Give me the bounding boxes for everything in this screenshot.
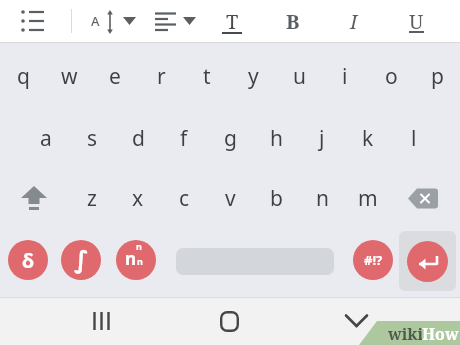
button[interactable]: u xyxy=(276,52,322,100)
button[interactable]: T xyxy=(212,2,252,40)
staticText: n xyxy=(137,255,143,267)
button[interactable]: B xyxy=(273,2,313,40)
staticText: d xyxy=(132,124,145,153)
button[interactable]: i xyxy=(322,52,368,100)
staticText: a xyxy=(40,124,52,153)
staticText: δ xyxy=(22,247,35,274)
button[interactable]: #!? xyxy=(353,240,393,280)
staticText: A xyxy=(91,12,100,30)
staticText: t xyxy=(203,62,211,91)
staticText: wiki xyxy=(388,323,424,345)
staticText: m xyxy=(358,184,378,213)
staticText: T xyxy=(226,8,239,35)
button[interactable]: s xyxy=(69,114,115,162)
button[interactable]: f xyxy=(161,114,207,162)
staticText: p xyxy=(431,62,444,91)
staticText: u xyxy=(293,62,306,91)
staticText: g xyxy=(224,124,237,153)
button[interactable]: a xyxy=(23,114,69,162)
button[interactable]: I xyxy=(334,2,374,40)
staticText: o xyxy=(385,62,398,91)
staticText: ∫ xyxy=(74,246,89,274)
staticText: U xyxy=(409,8,424,35)
button[interactable]: e xyxy=(92,52,138,100)
button[interactable]: j xyxy=(299,114,345,162)
staticText: f xyxy=(180,124,188,153)
button[interactable]: g xyxy=(207,114,253,162)
staticText: x xyxy=(132,184,144,213)
button[interactable]: x xyxy=(115,174,161,222)
staticText: n xyxy=(136,240,142,252)
staticText: j xyxy=(319,124,325,153)
button[interactable]: m xyxy=(345,174,391,222)
staticText: How xyxy=(422,323,459,345)
staticText: l xyxy=(411,124,417,153)
button[interactable] xyxy=(399,231,456,291)
button[interactable]: h xyxy=(253,114,299,162)
button[interactable]: w xyxy=(46,52,92,100)
button[interactable]: δ xyxy=(8,240,48,280)
button[interactable]: c xyxy=(161,174,207,222)
button[interactable]: k xyxy=(345,114,391,162)
button[interactable]: d xyxy=(115,114,161,162)
button[interactable]: r xyxy=(138,52,184,100)
staticText: z xyxy=(87,184,97,213)
button[interactable] xyxy=(150,3,202,39)
staticText: c xyxy=(179,184,190,213)
staticText: s xyxy=(87,124,98,153)
staticText: i xyxy=(342,62,348,91)
staticText: #!? xyxy=(364,251,383,269)
staticText: w xyxy=(61,62,78,91)
staticText: n xyxy=(316,184,329,213)
button[interactable]: z xyxy=(69,174,115,222)
button[interactable]: b xyxy=(253,174,299,222)
button[interactable] xyxy=(6,174,62,222)
staticText: y xyxy=(248,62,259,91)
staticText: r xyxy=(157,62,166,91)
button[interactable]: q xyxy=(0,52,46,100)
staticText: q xyxy=(17,62,30,91)
staticText: e xyxy=(109,62,121,91)
button[interactable]: U xyxy=(396,2,436,40)
button[interactable]: t xyxy=(184,52,230,100)
button[interactable] xyxy=(338,302,374,340)
button[interactable] xyxy=(211,302,247,340)
button[interactable]: v xyxy=(207,174,253,222)
staticText: B xyxy=(286,8,300,35)
button[interactable]: n xyxy=(116,240,156,280)
button[interactable] xyxy=(83,302,119,340)
staticText: k xyxy=(362,124,374,153)
button[interactable]: y xyxy=(230,52,276,100)
staticText: I xyxy=(350,8,358,35)
button[interactable]: l xyxy=(391,114,437,162)
button[interactable]: A xyxy=(85,3,147,39)
staticText: b xyxy=(270,184,283,213)
button[interactable]: ∫ xyxy=(61,240,101,280)
button[interactable]: p xyxy=(414,52,460,100)
staticText: h xyxy=(270,124,283,153)
staticText: n xyxy=(125,247,137,270)
staticText: v xyxy=(225,184,236,213)
button[interactable]: o xyxy=(368,52,414,100)
button[interactable]: n xyxy=(299,174,345,222)
button[interactable] xyxy=(14,3,52,39)
button[interactable] xyxy=(392,174,454,222)
